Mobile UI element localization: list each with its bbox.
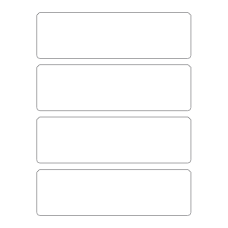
button[interactable]	[36, 64, 191, 111]
button[interactable]	[36, 12, 191, 59]
button[interactable]	[36, 169, 191, 216]
button[interactable]	[36, 117, 191, 164]
